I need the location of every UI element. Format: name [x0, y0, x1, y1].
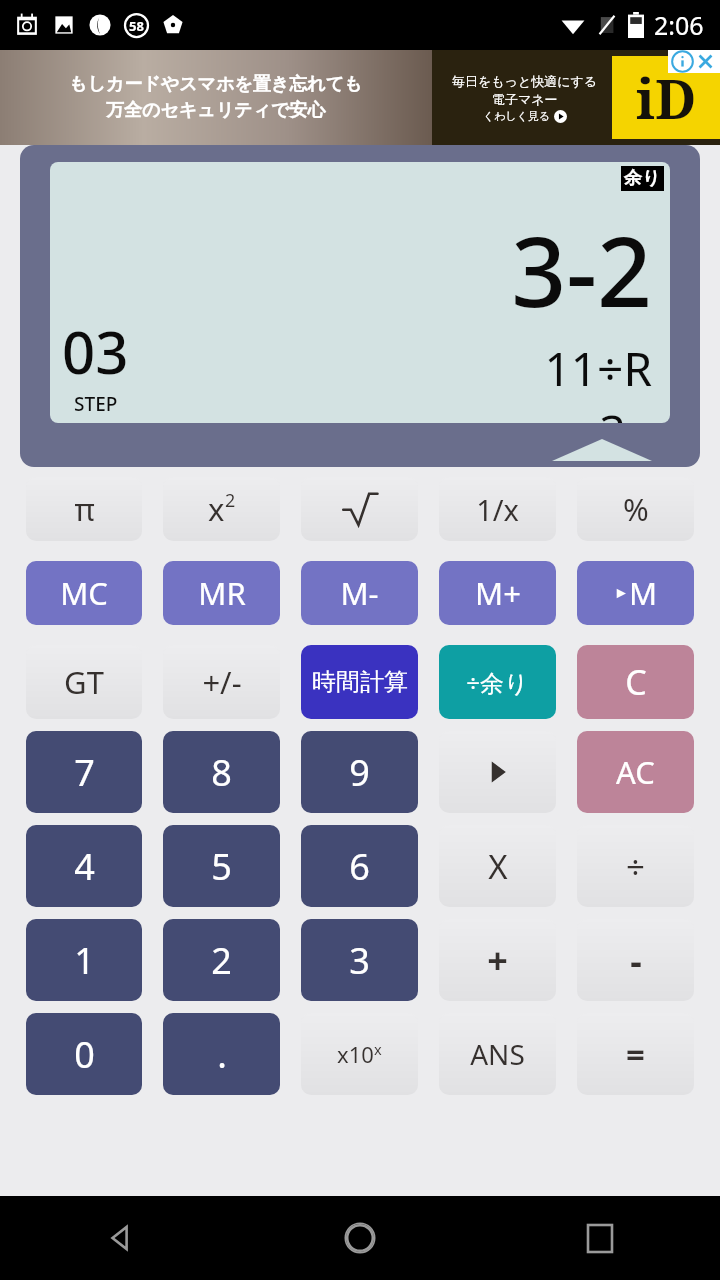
staticText: x — [374, 1039, 382, 1059]
button[interactable]: 9 — [301, 731, 418, 813]
staticText: iD — [636, 61, 697, 135]
staticText: C — [625, 659, 647, 705]
staticText: くわしく見る — [483, 109, 551, 123]
button[interactable]: 0 — [26, 1013, 142, 1095]
button[interactable]: +/- — [163, 645, 280, 719]
button[interactable]: GT — [26, 645, 142, 719]
staticText: 03 — [62, 312, 129, 391]
button[interactable]: = — [577, 1013, 694, 1095]
staticText: x — [208, 488, 225, 530]
staticText: 8 — [211, 748, 232, 797]
staticText: X — [488, 844, 508, 889]
staticText: MC — [60, 572, 108, 614]
button[interactable]: 5 — [163, 825, 280, 907]
staticText: もしカードやスマホを置き忘れても — [69, 73, 363, 96]
button[interactable]: + — [439, 919, 556, 1001]
button[interactable]: x — [163, 477, 280, 541]
staticText: AC — [616, 751, 655, 793]
button[interactable]: MR — [163, 561, 280, 625]
button[interactable]: Back — [0, 1196, 240, 1280]
button[interactable]: 1 — [26, 919, 142, 1001]
staticText: 3 — [349, 936, 370, 985]
button[interactable]: Ad info — [671, 50, 694, 73]
button[interactable]: Right arrow — [439, 731, 556, 813]
button[interactable]: MC — [26, 561, 142, 625]
button[interactable]: AC — [577, 731, 694, 813]
staticText: 7 — [74, 748, 95, 797]
staticText: 2 — [211, 936, 232, 985]
button[interactable]: - — [577, 919, 694, 1001]
staticText: ÷余り — [466, 666, 529, 699]
staticText: 1/x — [476, 490, 519, 529]
staticText: M+ — [475, 572, 521, 614]
staticText: 2:06 — [654, 8, 704, 42]
staticText: 6 — [349, 842, 370, 891]
staticText: ANS — [470, 1035, 525, 1073]
staticText: = — [626, 1032, 645, 1077]
button[interactable]: 7 — [26, 731, 142, 813]
staticText: 58 — [129, 17, 144, 35]
staticText: +/- — [202, 661, 242, 703]
staticText: M- — [340, 572, 379, 614]
staticText: GT — [64, 661, 104, 703]
button[interactable]: 4 — [26, 825, 142, 907]
staticText: MR — [198, 572, 246, 614]
staticText: π — [74, 488, 95, 530]
button[interactable]: ANS — [439, 1013, 556, 1095]
button[interactable]: 1/x — [439, 477, 556, 541]
button[interactable]: C — [577, 645, 694, 719]
staticText: 9 — [349, 748, 370, 797]
staticText: 余り — [624, 167, 661, 190]
button[interactable]: 8 — [163, 731, 280, 813]
button[interactable]: % — [577, 477, 694, 541]
staticText: + — [487, 936, 508, 985]
button[interactable]: 3 — [301, 919, 418, 1001]
button[interactable]: . — [163, 1013, 280, 1095]
button[interactable]: 2 — [163, 919, 280, 1001]
staticText: STEP — [74, 391, 118, 417]
staticText: 3-2 — [511, 204, 652, 335]
button[interactable]: π — [26, 477, 142, 541]
staticText: - — [630, 936, 642, 985]
staticText: 万全のセキュリティで安心 — [106, 99, 326, 122]
button[interactable]: Home — [240, 1196, 480, 1280]
staticText: 2 — [225, 488, 236, 512]
button[interactable]: M+ — [439, 561, 556, 625]
button[interactable]: ÷ — [577, 825, 694, 907]
button[interactable]: Recent apps — [480, 1196, 720, 1280]
button[interactable]: Close ad — [694, 50, 717, 73]
button[interactable]: 時間計算 — [301, 645, 418, 719]
staticText: % — [623, 488, 649, 530]
button[interactable]: x10 — [301, 1013, 418, 1095]
button[interactable]: M- — [301, 561, 418, 625]
staticText: x10 — [337, 1039, 374, 1069]
staticText: 5 — [211, 842, 232, 891]
staticText: 4 — [74, 842, 95, 891]
staticText: 1 — [74, 936, 95, 985]
button[interactable]: 6 — [301, 825, 418, 907]
button[interactable]: ÷余り — [439, 645, 556, 719]
staticText: 時間計算 — [312, 667, 408, 697]
staticText: 11÷R — [544, 337, 652, 400]
staticText: 電子マネー — [492, 91, 558, 107]
button[interactable]: M — [577, 561, 694, 625]
staticText: . — [217, 1030, 227, 1079]
staticText: M — [629, 572, 658, 614]
button[interactable]: X — [439, 825, 556, 907]
button[interactable] — [301, 477, 418, 541]
staticText: 毎日をもっと快適にする — [452, 73, 598, 89]
staticText: 3= — [599, 400, 652, 423]
staticText: ÷ — [626, 844, 645, 889]
staticText: 0 — [74, 1030, 95, 1079]
